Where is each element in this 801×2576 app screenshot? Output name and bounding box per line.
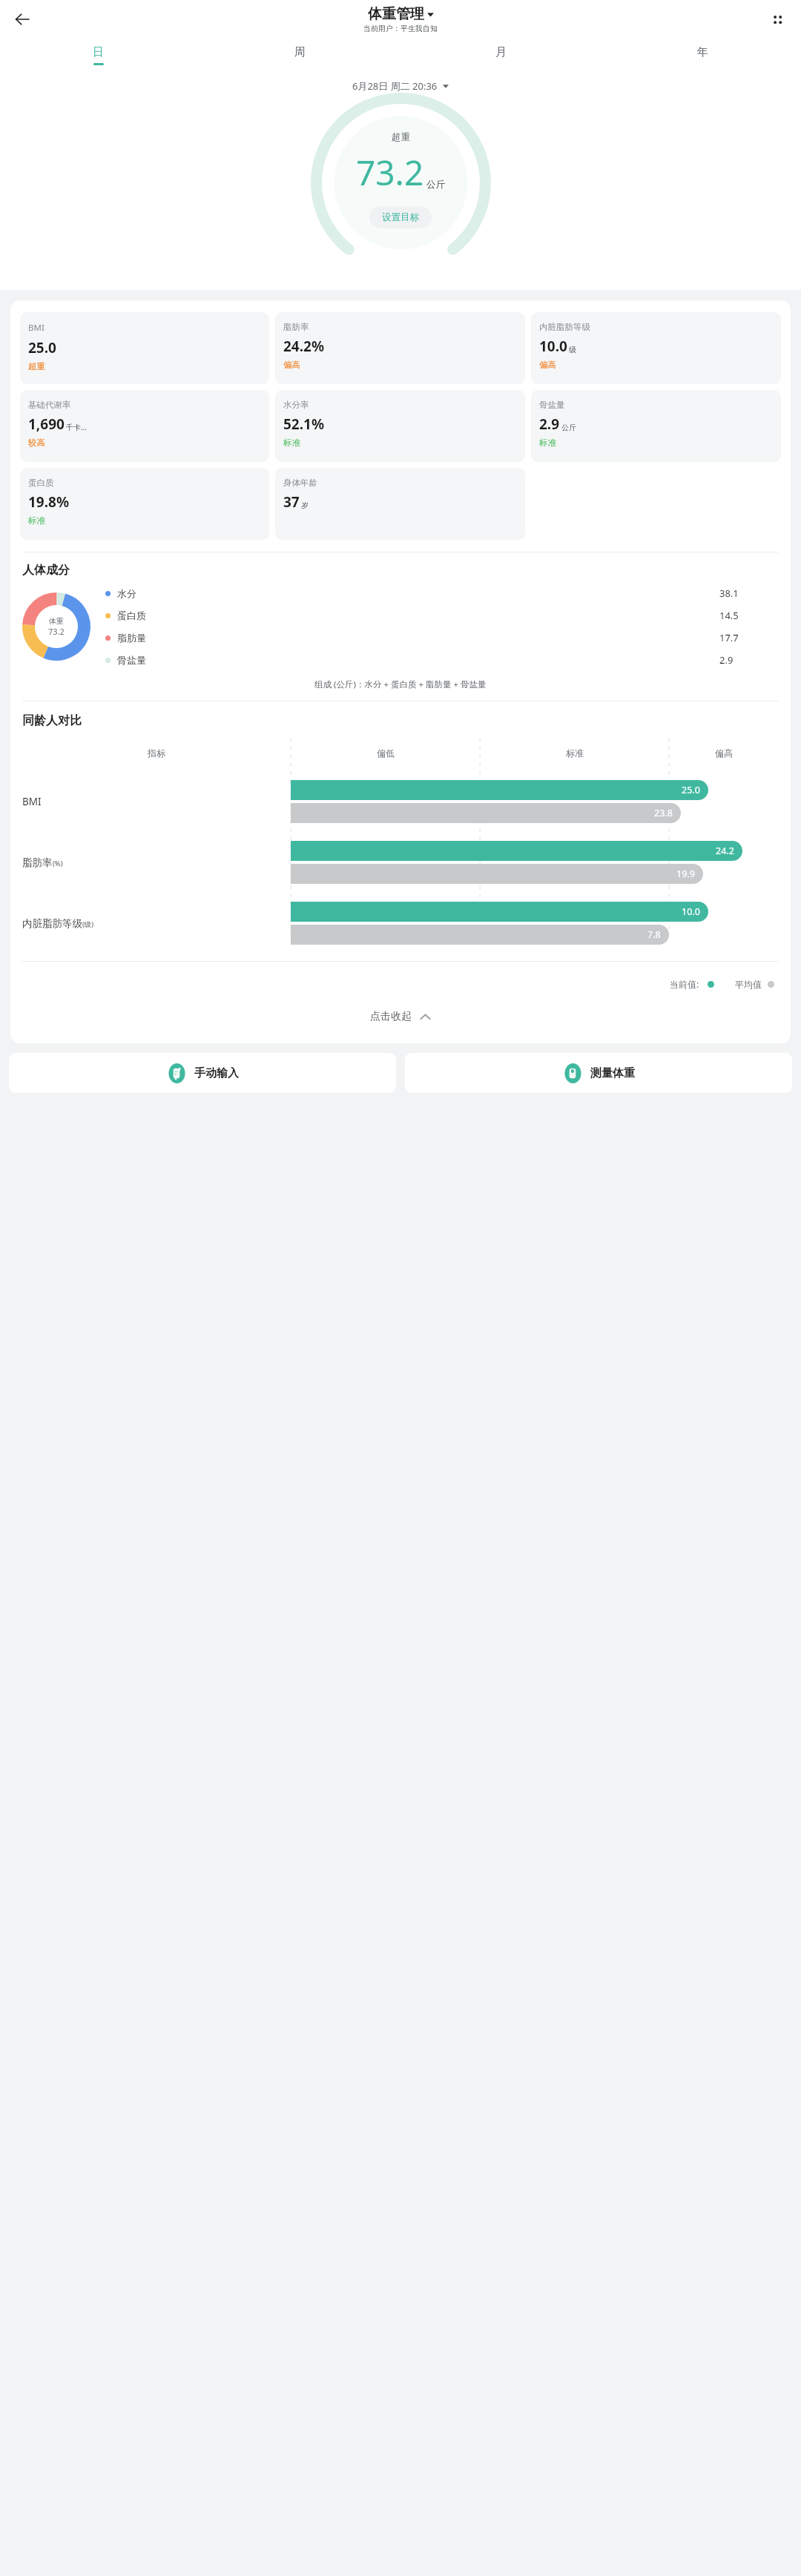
staticText: 岁 (301, 501, 309, 510)
staticText: 23.8 (654, 807, 673, 819)
staticText: 2.9 (539, 415, 560, 434)
staticText: 6月28日 周二 20:36 (352, 79, 438, 93)
staticText: 月 (495, 45, 507, 59)
staticText: 偏高 (283, 360, 300, 370)
staticText: 年 (697, 45, 708, 59)
staticText: 设置目标 (382, 211, 419, 223)
staticText: 体重 (49, 616, 64, 626)
staticText: 基础代谢率 (28, 400, 71, 410)
staticText: 蛋白质 (117, 610, 146, 621)
staticText: 24.2 (716, 845, 734, 857)
staticText: 水分 (117, 587, 136, 599)
staticText: 17.7 (719, 631, 739, 644)
staticText: 19.9 (676, 868, 695, 880)
button[interactable]: 设置目标 (369, 206, 432, 228)
staticText: 标准 (566, 747, 584, 759)
staticText: 体重管理 (368, 5, 424, 23)
button[interactable]: 身体年龄 (275, 468, 525, 540)
staticText: (%) (53, 859, 63, 868)
staticText: 内脏脂肪等级 (539, 322, 590, 332)
staticText: 日 (93, 45, 104, 59)
staticText: 25.0 (682, 784, 700, 796)
button[interactable]: 点击收起 (10, 990, 791, 1043)
staticText: 脂肪率 (283, 322, 309, 332)
staticText: 指标 (148, 747, 165, 759)
staticText: 14.5 (719, 609, 739, 622)
staticText: 周 (294, 45, 306, 59)
staticText: 标准 (283, 437, 300, 448)
button[interactable]: 水分率 (275, 390, 525, 462)
staticText: 级 (569, 345, 576, 354)
button[interactable]: 年 (692, 43, 713, 67)
button[interactable]: 月 (490, 43, 512, 67)
staticText: 37 (283, 492, 300, 512)
staticText: 脂肪量 (117, 632, 146, 644)
staticText: 点击收起 (370, 1010, 412, 1023)
button[interactable]: 脂肪率 (275, 312, 525, 384)
staticText: 水分率 (283, 400, 309, 410)
staticText: 10.0 (682, 905, 700, 918)
button[interactable]: BMI (20, 312, 269, 384)
staticText: 2.9 (719, 653, 734, 667)
button[interactable]: Back (6, 3, 39, 36)
staticText: 标准 (28, 515, 45, 526)
staticText: 偏低 (377, 747, 395, 759)
staticText: 73.2 (48, 626, 65, 637)
staticText: 蛋白质 (28, 478, 54, 488)
staticText: 骨盐量 (539, 400, 565, 410)
button[interactable]: 内脏脂肪等级 (531, 312, 781, 384)
staticText: 较高 (28, 437, 45, 448)
button[interactable]: 日 (88, 43, 109, 67)
staticText: (级) (82, 919, 94, 929)
staticText: 24.2% (283, 337, 325, 356)
staticText: 当前值: (670, 978, 699, 990)
staticText: 同龄人对比 (22, 713, 82, 728)
button[interactable]: 骨盐量 (531, 390, 781, 462)
staticText: 超重 (28, 361, 45, 371)
staticText: 脂肪率 (22, 856, 53, 869)
staticText: 19.8% (28, 492, 70, 512)
staticText: 52.1% (283, 415, 325, 434)
staticText: 公斤 (561, 423, 576, 432)
staticText: 10.0 (539, 337, 567, 356)
staticText: 千卡… (66, 422, 87, 432)
staticText: 手动输入 (194, 1066, 239, 1080)
staticText: 平均值 (735, 979, 762, 990)
button[interactable]: 6月28日 周二 20:36 (0, 79, 801, 93)
staticText: 当前用户：平生我自知 (363, 24, 438, 33)
button[interactable]: 体重管理 (368, 5, 434, 23)
staticText: 公斤 (426, 179, 445, 191)
staticText: 25.0 (28, 338, 56, 357)
button[interactable]: 基础代谢率 (20, 390, 269, 462)
button[interactable]: More options (761, 3, 794, 36)
staticText: 组成 (公斤)：水分 + 蛋白质 + 脂肪量 + 骨盐量 (314, 678, 487, 690)
button[interactable]: 周 (289, 43, 311, 67)
button[interactable]: 手动输入 (9, 1053, 396, 1093)
staticText: 73.2 (356, 149, 424, 196)
staticText: 偏高 (715, 747, 733, 759)
staticText: 测量体重 (590, 1066, 635, 1080)
staticText: BMI (28, 322, 44, 334)
staticText: 超重 (392, 131, 410, 143)
button[interactable]: 蛋白质 (20, 468, 269, 540)
staticText: BMI (22, 795, 42, 808)
staticText: 身体年龄 (283, 478, 317, 488)
staticText: 标准 (539, 437, 556, 448)
staticText: 38.1 (719, 587, 739, 600)
staticText: 骨盐量 (117, 654, 146, 666)
button[interactable]: 测量体重 (405, 1053, 792, 1093)
staticText: 1,690 (28, 415, 65, 434)
staticText: 偏高 (539, 360, 556, 370)
staticText: 内脏脂肪等级 (22, 917, 82, 930)
staticText: 7.8 (647, 928, 661, 941)
staticText: 人体成分 (22, 563, 70, 578)
